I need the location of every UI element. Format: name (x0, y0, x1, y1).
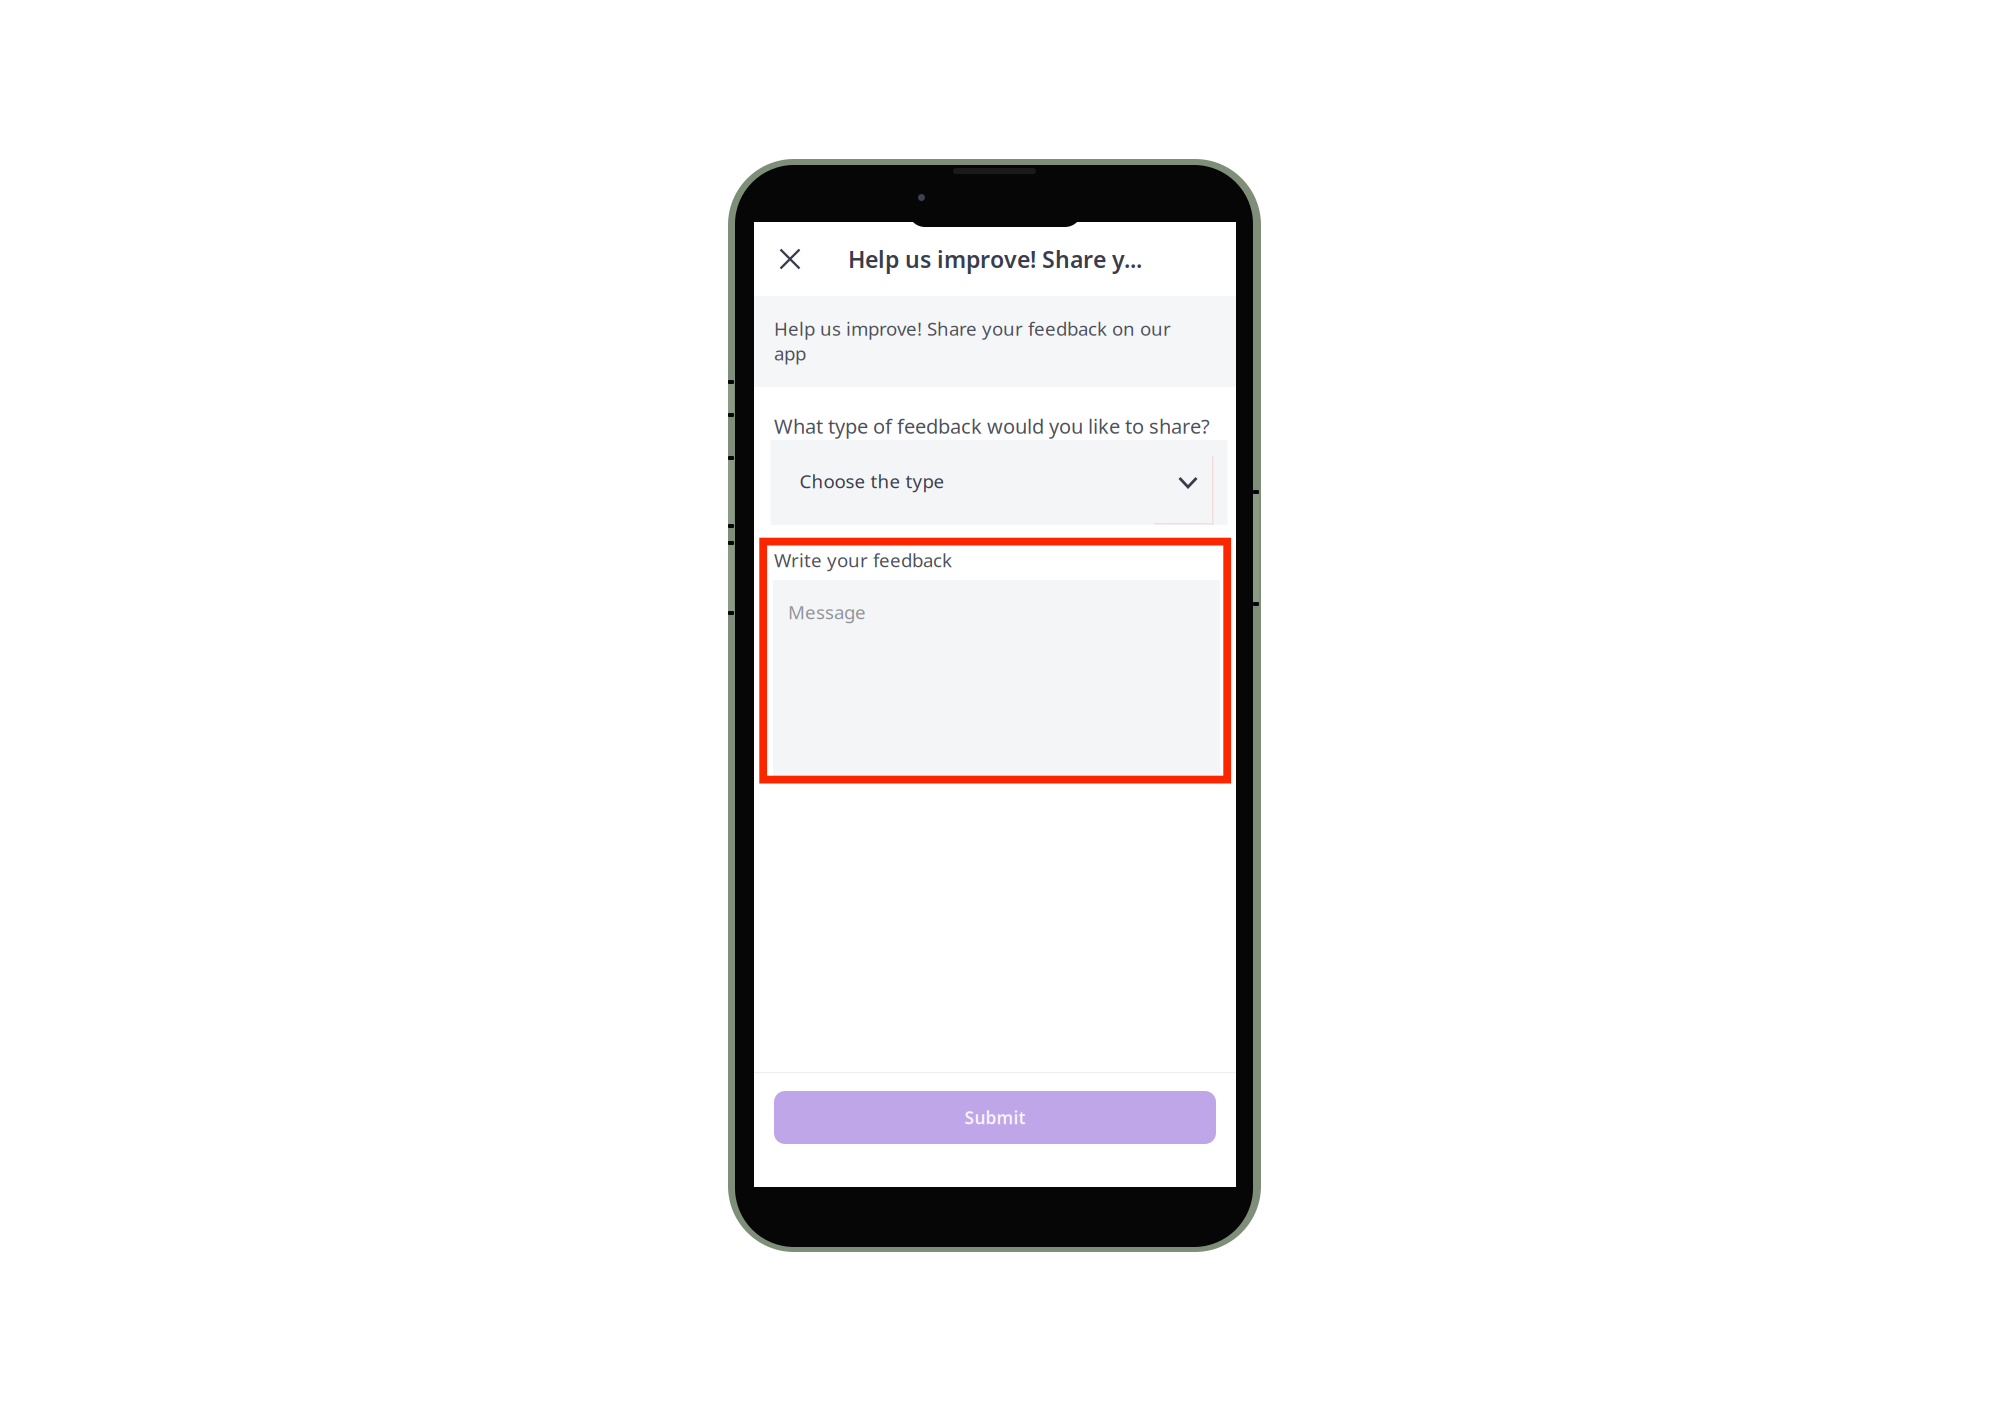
staticText: Submit (964, 1106, 1025, 1129)
button[interactable]: Choose the type (770, 440, 1227, 525)
staticText: Help us improve! Share y... (848, 244, 1142, 274)
button[interactable]: Message (773, 580, 1220, 776)
button[interactable]: Close (766, 235, 814, 283)
staticText: Write your feedback (774, 548, 952, 572)
staticText: Message (788, 600, 866, 624)
staticText: Help us improve! Share your feedback on … (774, 316, 1171, 366)
button[interactable]: Submit (774, 1091, 1216, 1144)
staticText: Choose the type (799, 469, 944, 493)
staticText: What type of feedback would you like to … (774, 413, 1210, 439)
